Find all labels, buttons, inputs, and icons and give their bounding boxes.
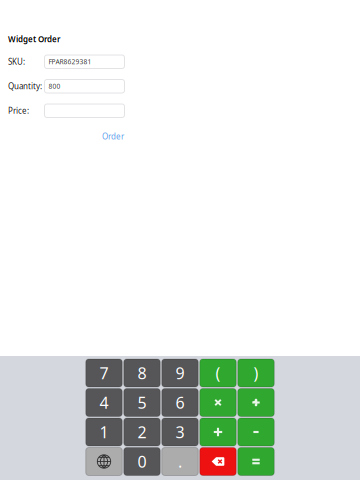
- staticText: Price:: [8, 105, 29, 116]
- staticText: 7: [99, 362, 108, 384]
- staticText: Order: [102, 131, 124, 142]
- button[interactable]: Equals: [238, 447, 274, 475]
- button[interactable]: Next keyboard: [86, 447, 122, 475]
- staticText: ): [253, 362, 258, 384]
- button[interactable]: 3: [162, 418, 198, 446]
- button[interactable]: Minus: [238, 418, 274, 446]
- button[interactable]: 1: [86, 418, 122, 446]
- staticText: Quantity:: [8, 81, 42, 91]
- button[interactable]: Plus: [200, 418, 236, 446]
- staticText: 5: [137, 392, 146, 413]
- button[interactable]: Multiply: [200, 388, 236, 416]
- button[interactable]: 5: [124, 388, 160, 416]
- button[interactable]: Price:: [44, 104, 124, 117]
- staticText: Widget Order: [8, 34, 60, 44]
- button[interactable]: Quantity:: [44, 79, 124, 93]
- staticText: 2: [137, 421, 146, 443]
- button[interactable]: 0: [124, 447, 160, 475]
- button[interactable]: SKU:: [44, 55, 124, 68]
- button[interactable]: (: [200, 359, 236, 387]
- staticText: 1: [99, 421, 108, 443]
- staticText: FPAR8629381: [48, 57, 91, 66]
- button[interactable]: Order: [102, 122, 124, 142]
- button[interactable]: .: [162, 447, 198, 475]
- button[interactable]: Divide: [238, 388, 274, 416]
- button[interactable]: 9: [162, 359, 198, 387]
- button[interactable]: 8: [124, 359, 160, 387]
- staticText: 3: [175, 421, 184, 443]
- staticText: 4: [99, 392, 108, 413]
- button[interactable]: 4: [86, 388, 122, 416]
- button[interactable]: ): [238, 359, 274, 387]
- staticText: 800: [48, 82, 60, 91]
- staticText: SKU:: [8, 56, 25, 67]
- staticText: (: [215, 362, 220, 384]
- staticText: 9: [175, 362, 184, 384]
- button[interactable]: 6: [162, 388, 198, 416]
- button[interactable]: 2: [124, 418, 160, 446]
- staticText: 0: [137, 451, 146, 472]
- staticText: 8: [137, 362, 146, 384]
- button[interactable]: 7: [86, 359, 122, 387]
- staticText: 6: [175, 392, 184, 413]
- button[interactable]: Delete: [200, 447, 236, 475]
- staticText: .: [178, 451, 182, 472]
